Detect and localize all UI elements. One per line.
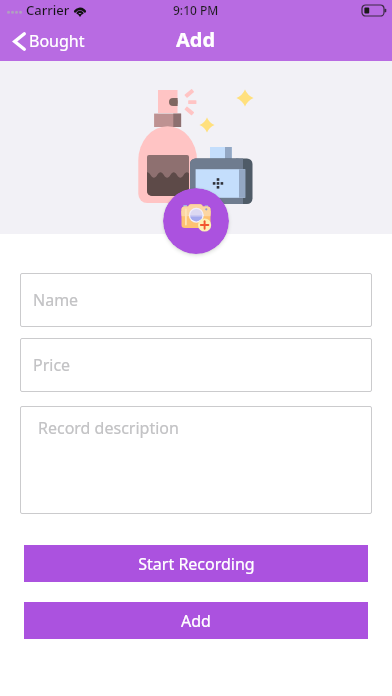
button[interactable]: Start Recording	[24, 545, 368, 582]
staticText: 9:10 PM	[173, 2, 219, 18]
button[interactable]: Price	[20, 338, 372, 392]
staticText: Start Recording	[138, 553, 255, 575]
button[interactable]: Bought	[0, 26, 93, 56]
staticText: Carrier	[26, 1, 70, 19]
button[interactable]: Add	[24, 602, 368, 639]
button[interactable]: Add photo	[163, 188, 229, 254]
staticText: Bought	[29, 30, 85, 52]
button[interactable]: Name	[20, 273, 372, 327]
staticText: Add	[176, 26, 216, 53]
staticText: Name	[33, 289, 79, 311]
button[interactable]: Record description	[20, 406, 372, 514]
staticText: Add	[181, 610, 211, 632]
staticText: Record description	[38, 417, 179, 439]
staticText: Price	[33, 354, 71, 376]
